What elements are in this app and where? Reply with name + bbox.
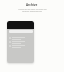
button[interactable] (7, 21, 34, 63)
staticText: Lorem ipsum dolor sit amet con (18, 8, 47, 11)
staticText: sectetur adipiscing elit (22, 10, 42, 13)
staticText: Archive (26, 3, 38, 7)
